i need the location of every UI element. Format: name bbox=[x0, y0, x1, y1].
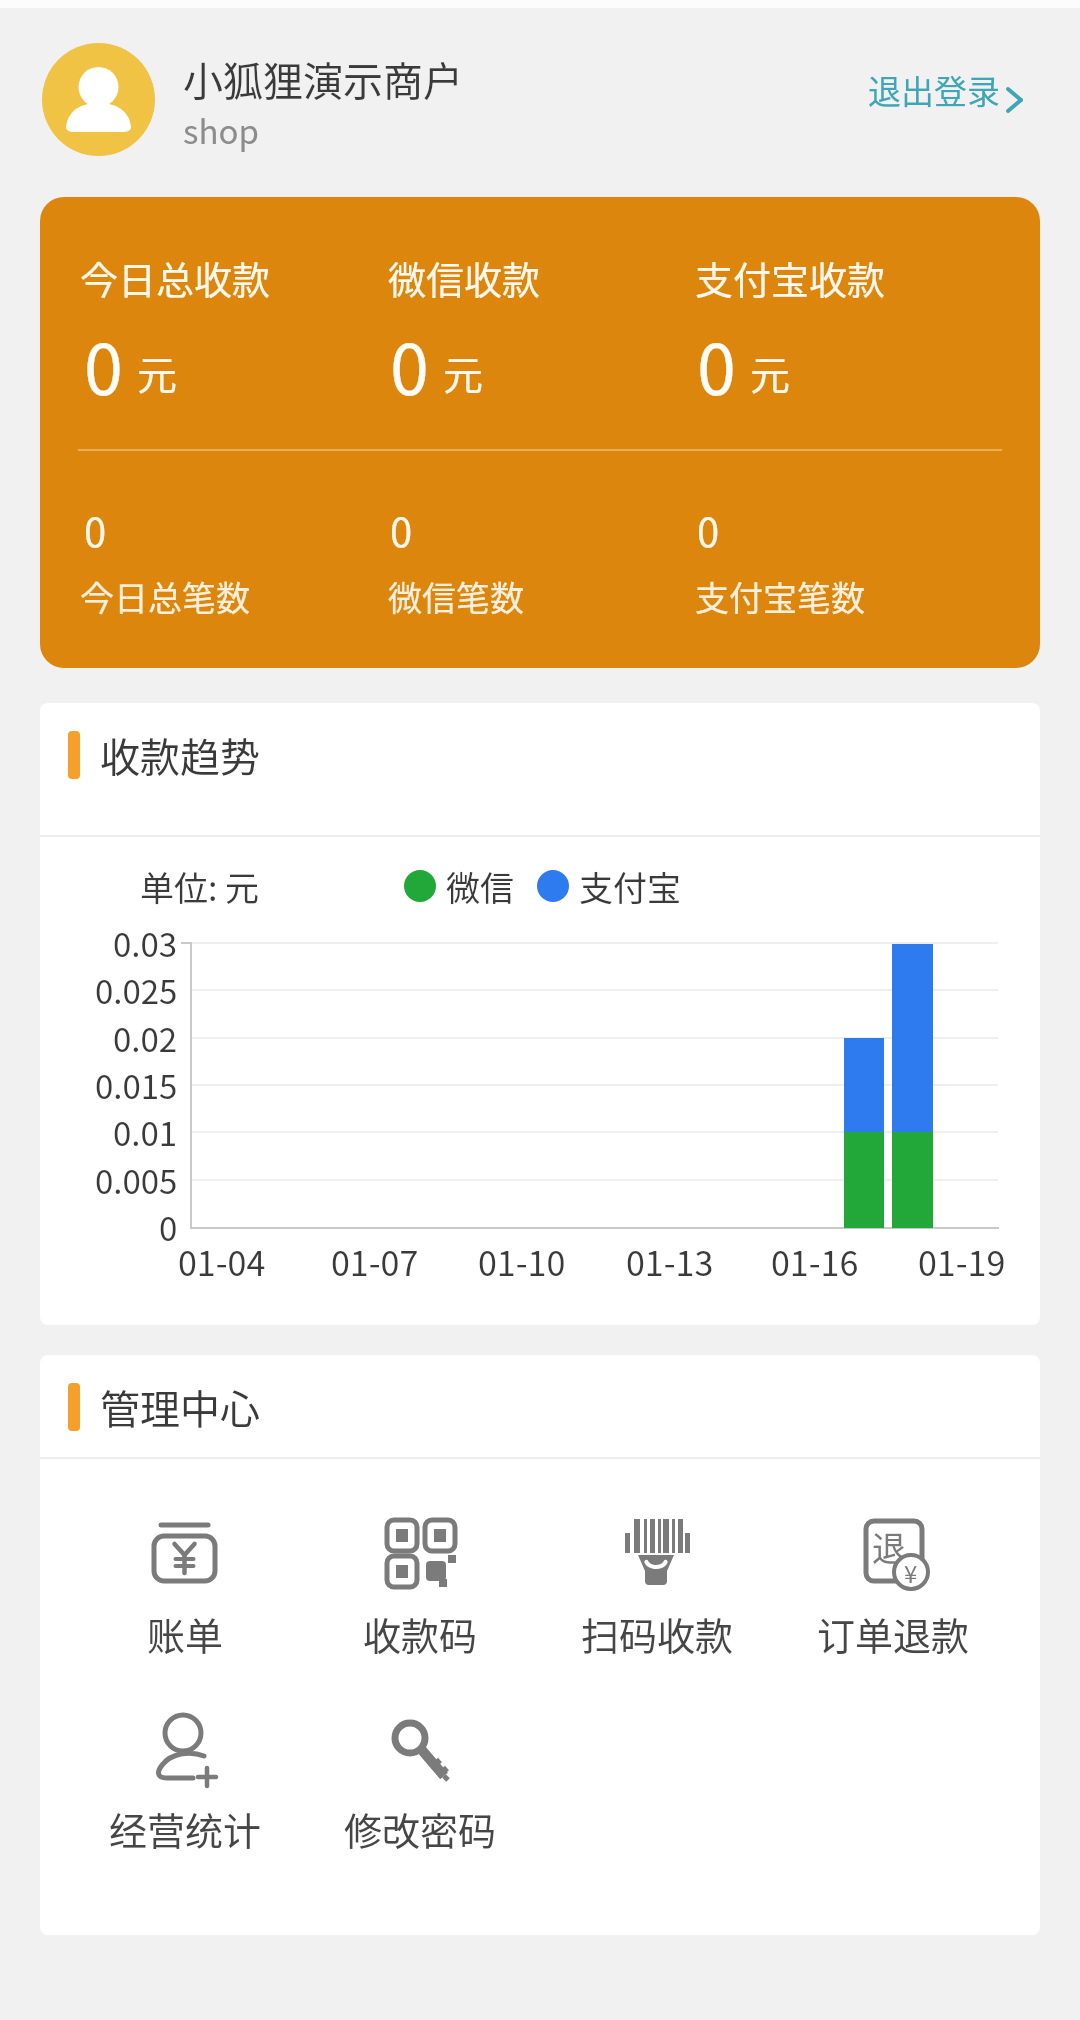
button[interactable]: 经营统计 bbox=[68, 1700, 303, 1870]
staticText: 经营统计 bbox=[109, 1801, 262, 1856]
staticText: 小狐狸演示商户 bbox=[183, 50, 463, 108]
staticText: 微信 bbox=[446, 862, 514, 911]
staticText: 账单 bbox=[147, 1606, 224, 1661]
staticText: 0.02 bbox=[113, 1014, 178, 1062]
staticText: 管理中心 bbox=[100, 1378, 260, 1436]
staticText: 扫码收款 bbox=[581, 1606, 734, 1661]
staticText: 0.015 bbox=[95, 1061, 178, 1109]
staticText: 今日总收款 bbox=[80, 250, 271, 305]
staticText: ¥ bbox=[904, 1555, 918, 1590]
staticText: 单位: 元 bbox=[140, 862, 260, 911]
staticText: 0.03 bbox=[113, 919, 178, 967]
staticText: 支付宝 bbox=[579, 862, 681, 911]
staticText: 01-04 bbox=[178, 1237, 266, 1286]
staticText: 0 bbox=[390, 501, 413, 559]
button[interactable]: 账单 bbox=[68, 1505, 303, 1675]
staticText: shop bbox=[183, 106, 259, 154]
button[interactable]: 退 bbox=[776, 1505, 1011, 1675]
button[interactable]: 退出登录 bbox=[855, 60, 1040, 140]
staticText: 退 bbox=[872, 1522, 906, 1571]
staticText: 01-07 bbox=[331, 1237, 419, 1286]
staticText: 0.025 bbox=[95, 966, 178, 1014]
staticText: 修改密码 bbox=[344, 1801, 497, 1856]
staticText: 0 bbox=[159, 1203, 178, 1251]
staticText: 0.01 bbox=[113, 1108, 178, 1156]
staticText: 支付宝笔数 bbox=[695, 572, 865, 621]
staticText: 收款码 bbox=[363, 1606, 478, 1661]
staticText: 01-19 bbox=[918, 1237, 1006, 1286]
staticText: 01-10 bbox=[478, 1237, 566, 1286]
staticText: 0 bbox=[697, 314, 736, 414]
staticText: 元 bbox=[137, 344, 177, 402]
staticText: 微信收款 bbox=[388, 250, 541, 305]
staticText: 微信笔数 bbox=[388, 572, 524, 621]
staticText: 订单退款 bbox=[817, 1606, 970, 1661]
staticText: 元 bbox=[443, 344, 483, 402]
button[interactable] bbox=[42, 43, 155, 156]
staticText: 今日总笔数 bbox=[80, 572, 250, 621]
staticText: 退出登录 bbox=[868, 66, 1000, 114]
staticText: 0 bbox=[697, 501, 720, 559]
staticText: 收款趋势 bbox=[100, 726, 260, 784]
button[interactable]: 扫码收款 bbox=[540, 1505, 775, 1675]
staticText: 元 bbox=[750, 344, 790, 402]
staticText: 0.005 bbox=[95, 1156, 178, 1204]
staticText: 支付宝收款 bbox=[695, 250, 886, 305]
staticText: 01-13 bbox=[626, 1237, 714, 1286]
staticText: 0 bbox=[84, 501, 107, 559]
staticText: 01-16 bbox=[771, 1237, 859, 1286]
button[interactable]: 修改密码 bbox=[303, 1700, 538, 1870]
staticText: 0 bbox=[84, 314, 123, 414]
button[interactable]: 收款码 bbox=[303, 1505, 538, 1675]
staticText: 0 bbox=[390, 314, 429, 414]
